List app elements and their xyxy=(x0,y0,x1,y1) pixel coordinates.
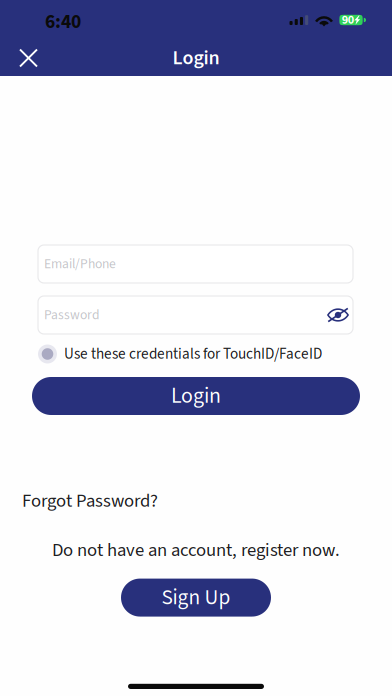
staticText: Use these credentials for TouchID/FaceID xyxy=(64,343,322,365)
button[interactable]: Login xyxy=(32,377,360,415)
staticText: Login xyxy=(171,380,221,411)
button[interactable]: Forgot Password? xyxy=(0,491,392,511)
button[interactable]: Show password xyxy=(327,307,349,323)
staticText: Email/Phone xyxy=(44,254,116,274)
staticText: Password xyxy=(44,305,100,325)
button[interactable]: Sign Up xyxy=(121,579,271,617)
staticText: Sign Up xyxy=(161,582,230,613)
staticText: Login xyxy=(172,44,219,72)
staticText: 6:40 xyxy=(45,8,81,36)
button[interactable]: Close xyxy=(0,40,59,76)
staticText: Forgot Password? xyxy=(22,488,158,514)
staticText: 90 xyxy=(342,11,354,29)
button[interactable]: Use these credentials for TouchID/FaceID xyxy=(0,344,392,364)
staticText: Do not have an account, register now. xyxy=(52,537,340,564)
